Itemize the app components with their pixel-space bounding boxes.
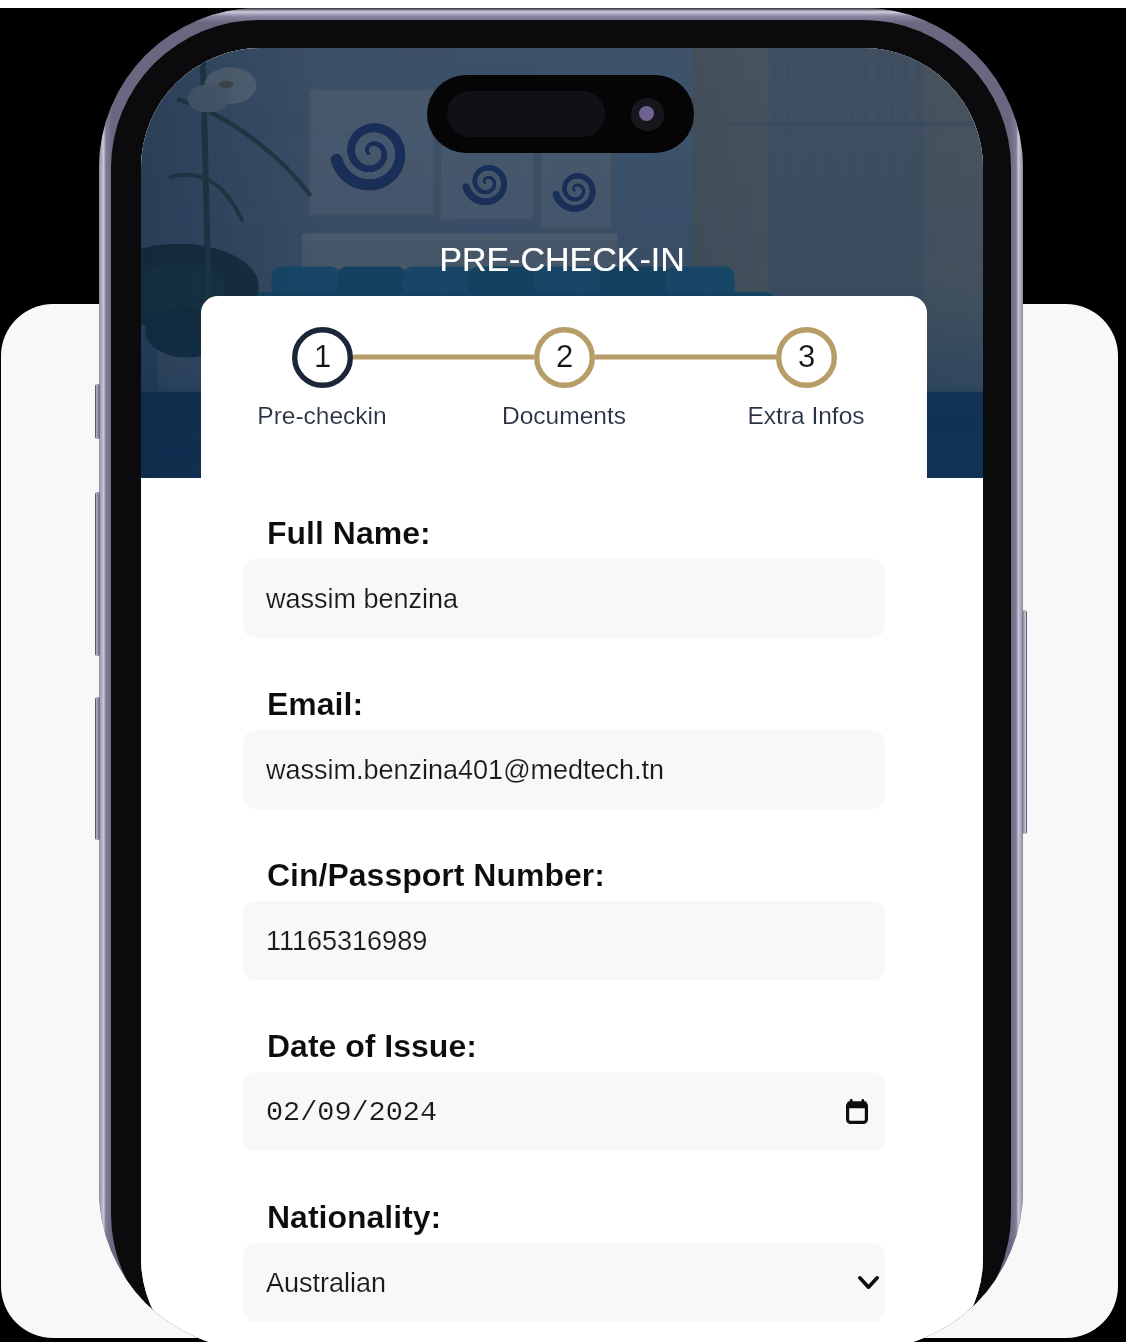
staticText: wassim.benzina401@medtech.tn bbox=[266, 755, 665, 785]
staticText: Extra Infos bbox=[747, 402, 865, 429]
button[interactable]: 3 bbox=[685, 296, 927, 429]
staticText: Email: bbox=[267, 686, 364, 722]
staticText: Nationality: bbox=[267, 1199, 442, 1235]
staticText: 11165316989 bbox=[266, 926, 428, 956]
button[interactable]: 1 bbox=[201, 296, 443, 429]
staticText: 2 bbox=[556, 339, 574, 374]
staticText: 02/09/2024 bbox=[266, 1096, 438, 1128]
staticText: Australian bbox=[266, 1268, 387, 1298]
staticText: wassim benzina bbox=[266, 584, 459, 614]
staticText: Cin/Passport Number: bbox=[267, 857, 605, 893]
other: Pick date bbox=[846, 1099, 868, 1124]
staticText: Date of Issue: bbox=[267, 1028, 477, 1064]
staticText: Full Name: bbox=[267, 515, 431, 551]
other: Open dropdown bbox=[858, 1276, 879, 1289]
button[interactable]: 02/09/2024 bbox=[243, 1072, 885, 1151]
button[interactable]: 2 bbox=[443, 296, 685, 429]
button[interactable]: 11165316989 bbox=[243, 901, 885, 980]
staticText: 3 bbox=[798, 339, 816, 374]
button[interactable]: Australian bbox=[243, 1243, 885, 1322]
button[interactable]: wassim.benzina401@medtech.tn bbox=[243, 730, 885, 809]
staticText: 1 bbox=[314, 339, 332, 374]
staticText: PRE-CHECK-IN bbox=[439, 240, 685, 278]
button[interactable]: wassim benzina bbox=[243, 559, 885, 638]
staticText: Documents bbox=[502, 402, 626, 429]
staticText: Pre-checkin bbox=[257, 402, 387, 429]
